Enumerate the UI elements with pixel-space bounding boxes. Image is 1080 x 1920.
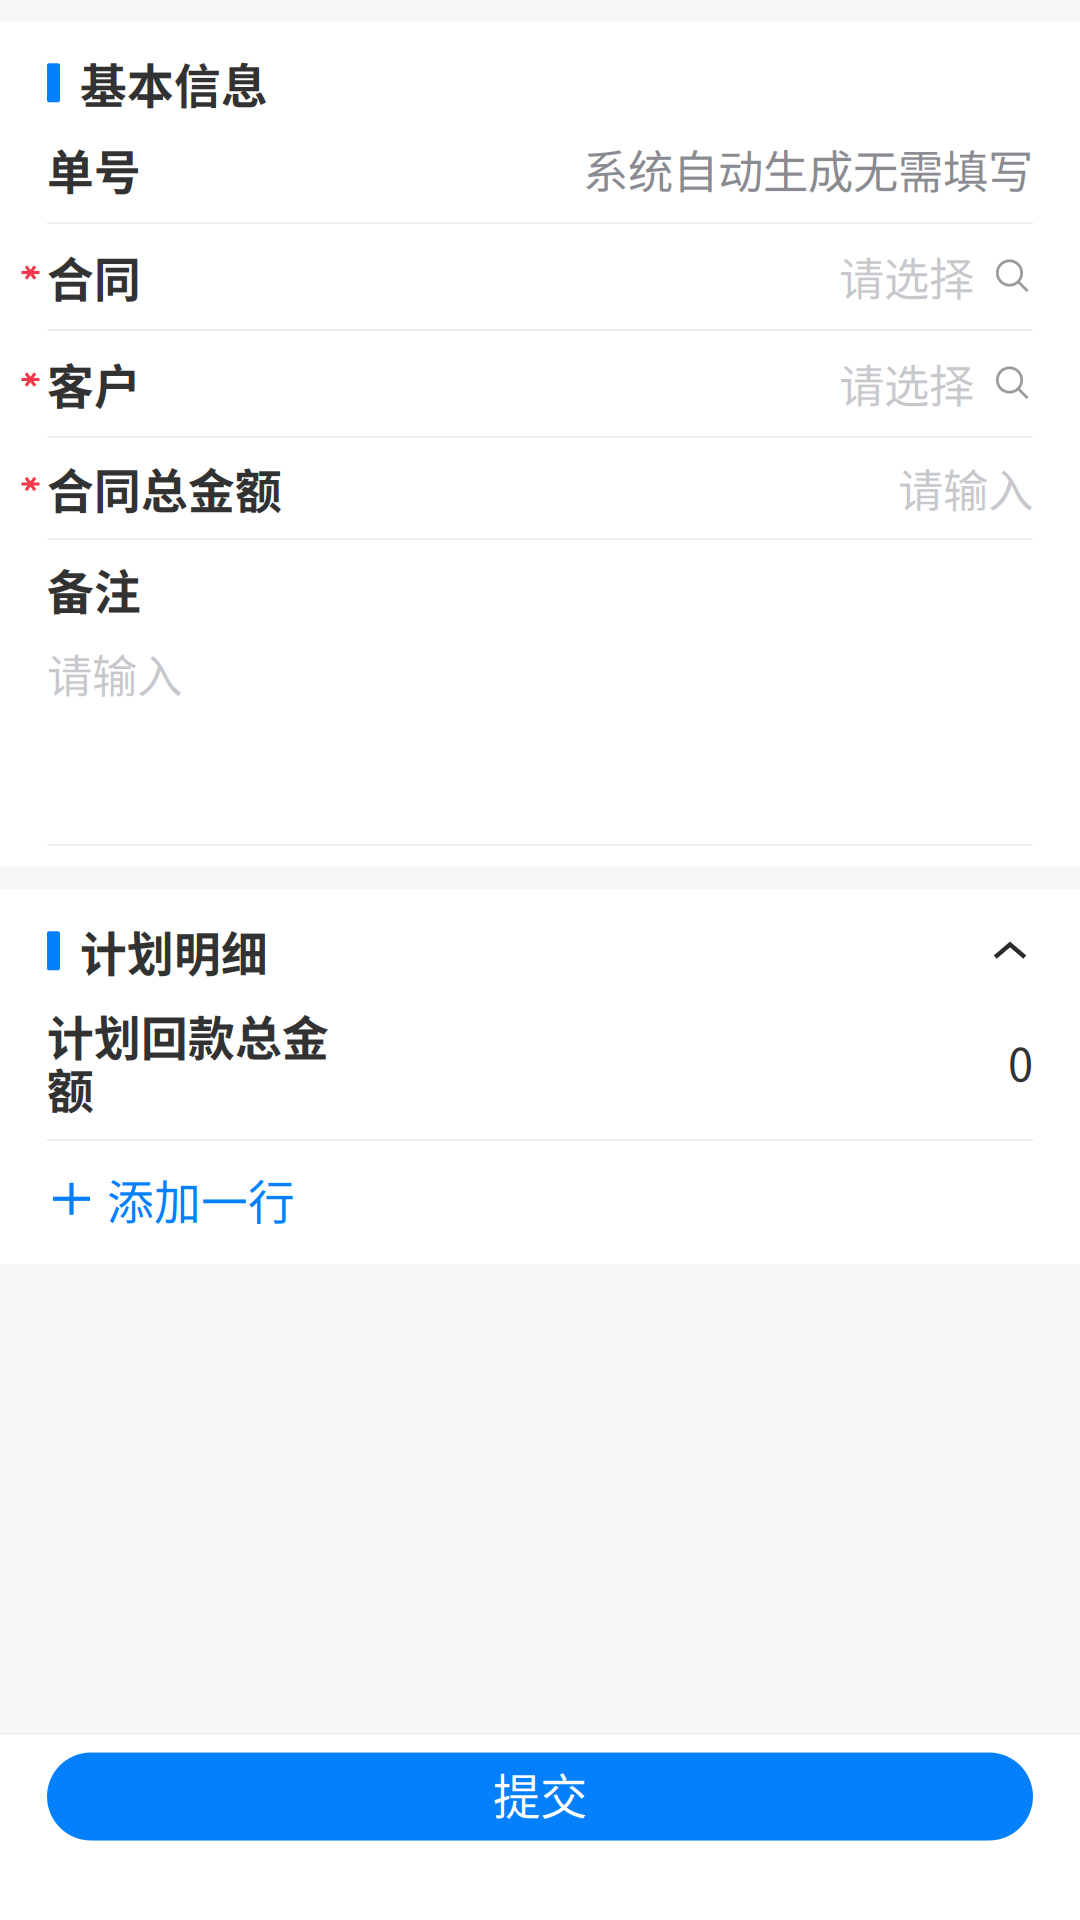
staticText: 添加一行 xyxy=(107,1165,295,1233)
staticText: 计划回款总金额 xyxy=(47,1009,329,1114)
button[interactable]: 合同总金额 xyxy=(0,438,1080,538)
button[interactable]: 提交 xyxy=(47,1752,1033,1840)
staticText: 请输入 xyxy=(898,455,1033,521)
staticText: 请选择 xyxy=(839,244,974,309)
staticText: 请输入 xyxy=(47,641,182,706)
staticText: 合同 xyxy=(47,243,141,310)
button[interactable]: 添加一行 xyxy=(0,1141,1080,1264)
staticText: 请选择 xyxy=(839,351,974,416)
staticText: 单号 xyxy=(47,135,141,203)
staticText: 基本信息 xyxy=(80,49,268,117)
button[interactable]: 合同 xyxy=(0,224,1080,329)
staticText: 备注 xyxy=(47,555,141,623)
staticText: 系统自动生成无需填写 xyxy=(583,136,1033,202)
button[interactable]: 单号 xyxy=(0,116,1080,222)
button[interactable]: Collapse 计划明细 xyxy=(953,920,1033,981)
staticText: 合同总金额 xyxy=(47,454,282,522)
staticText: 提交 xyxy=(493,1759,587,1828)
button[interactable]: 备注 xyxy=(0,540,1080,844)
button[interactable]: 客户 xyxy=(0,331,1080,436)
staticText: 0 xyxy=(1008,1029,1033,1094)
staticText: 计划明细 xyxy=(80,917,268,985)
staticText: 客户 xyxy=(47,350,141,417)
